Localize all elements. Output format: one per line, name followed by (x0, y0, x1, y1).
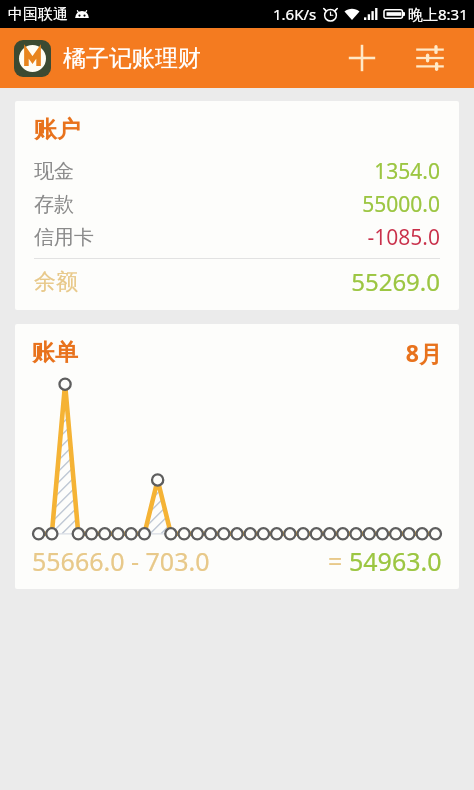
button[interactable]: Add (336, 32, 388, 84)
staticText: 晚上8:31 (408, 4, 468, 24)
button[interactable]: 账单 (15, 324, 459, 589)
staticText: 存款 (34, 192, 74, 217)
staticText: 8月 (78, 337, 442, 368)
staticText: 55666.0 - 703.0 (32, 544, 210, 578)
staticText: 54963.0 (349, 544, 442, 578)
button[interactable]: 橘子记账理财 (14, 40, 201, 77)
staticText: -1085.0 (94, 223, 440, 252)
staticText: 1354.0 (74, 157, 440, 186)
staticText: 账单 (32, 338, 78, 367)
staticText: 信用卡 (34, 225, 94, 250)
staticText: 55000.0 (74, 190, 440, 219)
staticText: 1.6K/s (273, 4, 317, 24)
staticText: 余额 (34, 268, 78, 296)
button[interactable]: Settings (404, 32, 456, 84)
staticText: = (328, 544, 349, 578)
staticText: 55269.0 (78, 265, 440, 298)
button[interactable]: 账户 (15, 101, 459, 310)
staticText: 橘子记账理财 (63, 44, 201, 73)
staticText: 中国联通 (8, 5, 68, 24)
staticText: 账户 (34, 115, 80, 144)
staticText: 现金 (34, 159, 74, 184)
